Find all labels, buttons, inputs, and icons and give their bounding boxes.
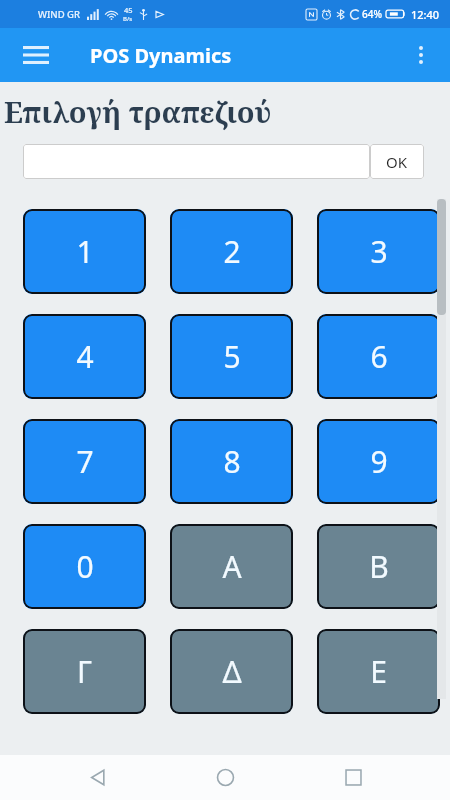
button[interactable]: Γ bbox=[23, 629, 146, 714]
button[interactable]: Α bbox=[170, 524, 293, 609]
staticText: OK bbox=[386, 152, 408, 172]
staticText: Ε bbox=[370, 651, 387, 692]
staticText: 3 bbox=[370, 231, 388, 272]
button[interactable]: More options bbox=[398, 32, 444, 78]
button[interactable]: Δ bbox=[170, 629, 293, 714]
staticText: 45 bbox=[124, 5, 133, 15]
button[interactable]: 2 bbox=[170, 209, 293, 294]
button[interactable] bbox=[23, 144, 370, 179]
button[interactable]: 1 bbox=[23, 209, 146, 294]
staticText: Α bbox=[222, 546, 242, 587]
button[interactable]: 5 bbox=[170, 314, 293, 399]
button[interactable]: 3 bbox=[317, 209, 440, 294]
staticText: POS Dynamics bbox=[90, 42, 232, 69]
staticText: 1 bbox=[76, 231, 94, 272]
staticText: 8 bbox=[223, 441, 241, 482]
staticText: 6 bbox=[370, 336, 388, 377]
staticText: Δ bbox=[222, 651, 242, 692]
staticText: Γ bbox=[77, 651, 92, 692]
staticText: 64% bbox=[362, 7, 382, 21]
staticText: 0 bbox=[76, 546, 94, 587]
staticText: 12:40 bbox=[411, 7, 440, 22]
button[interactable]: Open navigation menu bbox=[10, 29, 62, 81]
staticText: B/s bbox=[123, 15, 133, 23]
staticText: 5 bbox=[223, 336, 241, 377]
staticText: WIND GR bbox=[38, 8, 80, 21]
button[interactable]: Back bbox=[68, 755, 128, 800]
button[interactable]: Home bbox=[195, 755, 255, 800]
staticText: 7 bbox=[76, 441, 94, 482]
button[interactable]: Ε bbox=[317, 629, 440, 714]
button[interactable]: 9 bbox=[317, 419, 440, 504]
button[interactable]: 6 bbox=[317, 314, 440, 399]
button[interactable]: 4 bbox=[23, 314, 146, 399]
button[interactable]: Recent apps bbox=[323, 755, 383, 800]
staticText: 9 bbox=[370, 441, 388, 482]
button[interactable]: 0 bbox=[23, 524, 146, 609]
staticText: Β bbox=[369, 546, 389, 587]
staticText: Επιλογή τραπεζιού bbox=[4, 92, 272, 131]
staticText: 2 bbox=[223, 231, 241, 272]
button[interactable]: OK bbox=[370, 144, 424, 179]
button[interactable]: Β bbox=[317, 524, 440, 609]
button[interactable]: 7 bbox=[23, 419, 146, 504]
button[interactable]: 8 bbox=[170, 419, 293, 504]
staticText: 4 bbox=[76, 336, 94, 377]
